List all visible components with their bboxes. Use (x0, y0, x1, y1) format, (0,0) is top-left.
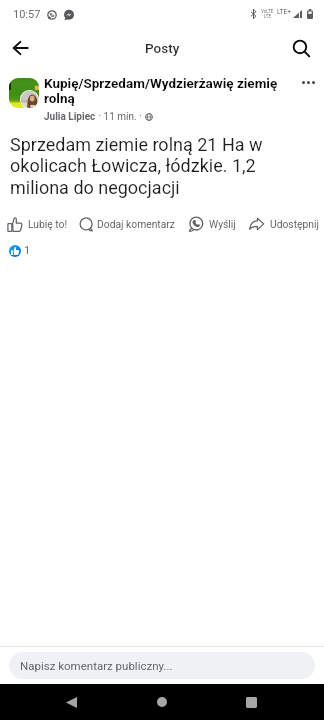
staticText: 1 (24, 244, 31, 257)
button[interactable]: Recent apps (231, 684, 272, 720)
staticText: VoLTE (261, 9, 274, 14)
staticText: Lubię to! (28, 218, 68, 230)
staticText: Napisz komentarz publiczny... (20, 659, 173, 672)
button[interactable]: Home (141, 684, 182, 720)
staticText: 10:57 (13, 8, 41, 21)
staticText: LTE+ (277, 8, 291, 16)
button[interactable]: Search (285, 32, 317, 64)
staticText: Kupię/Sprzedam/Wydzierżawię ziemię rolną (44, 75, 288, 107)
button[interactable]: Dodaj komentarz (77, 214, 178, 234)
button[interactable]: Wyślij (185, 214, 239, 234)
staticText: · 11 min. · (96, 111, 145, 123)
button[interactable]: Udostępnij (246, 214, 322, 234)
button[interactable]: Back (51, 684, 92, 720)
staticText: Wyślij (209, 218, 236, 230)
button[interactable]: Napisz komentarz publiczny... (9, 652, 315, 679)
staticText: Udostępnij (270, 218, 319, 230)
staticText: Posty (145, 40, 180, 56)
button[interactable]: More options (294, 70, 322, 94)
staticText: Dodaj komentarz (97, 218, 175, 230)
button[interactable]: Back (5, 32, 37, 64)
button[interactable]: Lubię to! (4, 214, 71, 234)
staticText: Sprzedam ziemie rolną 21 Ha w okolicach … (10, 134, 300, 199)
staticText: Julia Lipiec (44, 111, 96, 123)
staticText: LTE (264, 14, 272, 19)
